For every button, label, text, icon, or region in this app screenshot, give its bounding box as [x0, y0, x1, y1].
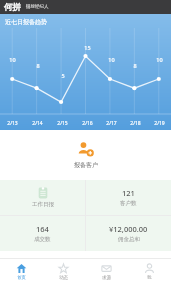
staticText: 报备客户: [74, 161, 98, 169]
staticText: 近七日报备趋势: [5, 18, 47, 26]
button[interactable]: 动态: [42, 259, 85, 285]
staticText: 我: [147, 275, 152, 281]
button[interactable]: 求源: [85, 259, 128, 285]
staticText: 首页: [17, 275, 26, 281]
staticText: 求源: [102, 275, 111, 281]
staticText: 2/17: [106, 120, 117, 127]
staticText: 何拼: [4, 2, 21, 13]
button[interactable]: 工作日报: [0, 180, 85, 215]
button[interactable]: 首页: [0, 259, 42, 285]
staticText: 15: [84, 44, 91, 51]
staticText: 2/15: [57, 120, 68, 127]
staticText: 8: [133, 62, 137, 69]
staticText: 2/14: [32, 120, 43, 127]
staticText: 5: [61, 72, 65, 79]
staticText: 成交数: [34, 236, 51, 243]
button[interactable]: 报备客户: [0, 141, 171, 169]
staticText: 2/19: [154, 120, 165, 127]
staticText: 2/13: [7, 120, 18, 127]
staticText: 10: [156, 56, 163, 63]
staticText: 动态: [59, 275, 68, 281]
staticText: 164: [36, 224, 49, 234]
staticText: 客户数: [120, 200, 137, 207]
button[interactable]: 我: [128, 259, 171, 285]
staticText: 工作日报: [32, 201, 54, 208]
staticText: ¥12,000.00: [109, 224, 148, 234]
staticText: 10: [9, 56, 16, 63]
staticText: 铜牌经纪人: [26, 4, 49, 10]
button[interactable]: 121: [86, 180, 171, 215]
staticText: 2/16: [82, 120, 93, 127]
staticText: 121: [122, 188, 135, 198]
staticText: 10: [108, 56, 115, 63]
button[interactable]: ¥12,000.00: [86, 216, 171, 251]
staticText: 8: [36, 62, 40, 69]
staticText: 2/18: [130, 120, 141, 127]
button[interactable]: 164: [0, 216, 85, 251]
staticText: 佣金总和: [118, 236, 140, 243]
